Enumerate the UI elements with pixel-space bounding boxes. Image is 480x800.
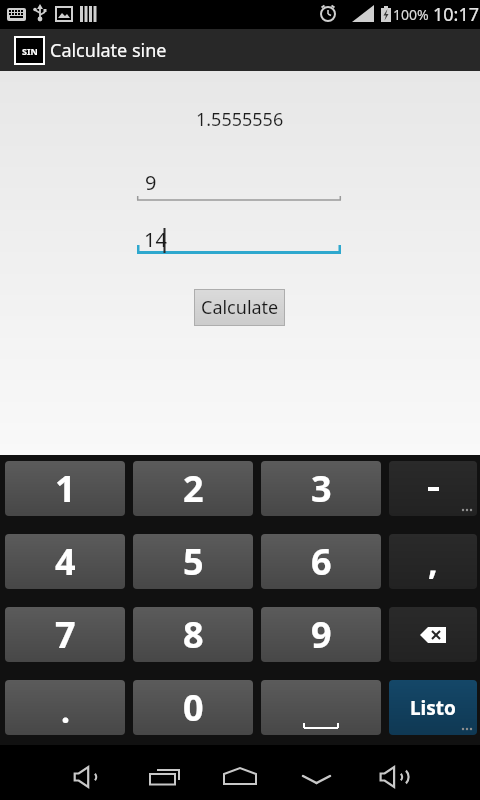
staticText: , [428,539,438,585]
button[interactable]: . [5,680,125,735]
button[interactable]: 9 [137,167,341,201]
staticText: 5 [183,537,204,586]
staticText: Calculate [201,295,279,320]
button[interactable]: 2 [133,461,253,516]
button[interactable]: 7 [5,607,125,662]
staticText: 6 [311,537,332,586]
button[interactable] [366,749,414,797]
staticText: Calculate sine [50,38,167,63]
button[interactable]: 1 [5,461,125,516]
staticText: 2 [183,464,204,513]
button[interactable] [389,461,477,516]
button[interactable]: 6 [261,534,381,589]
staticText: 8 [183,610,204,659]
button[interactable] [140,749,188,797]
staticText: 7 [55,610,76,659]
staticText: 4 [55,537,76,586]
staticText: 0 [183,683,204,732]
staticText: 3 [311,464,332,513]
button[interactable]: 8 [133,607,253,662]
button[interactable] [58,749,106,797]
staticText: 9 [311,610,332,659]
staticText: Listo [410,695,456,721]
button[interactable]: 5 [133,534,253,589]
staticText: 10:17 [433,2,480,27]
button[interactable]: Listo [389,680,477,735]
button[interactable]: 4 [5,534,125,589]
staticText: 1.5555556 [196,107,284,132]
button[interactable] [389,607,477,662]
button[interactable]: , [389,534,477,589]
button[interactable]: 3 [261,461,381,516]
staticText: 1 [55,464,76,513]
staticText: 9 [145,169,157,196]
button[interactable]: SIN [14,36,45,65]
staticText: SIN [22,45,38,57]
staticText: 14 [144,226,167,253]
button[interactable] [292,749,340,797]
button[interactable] [261,680,381,735]
button[interactable]: 14 [137,220,341,254]
button[interactable]: Calculate [194,289,285,326]
staticText: . [61,689,70,733]
button[interactable]: 0 [133,680,253,735]
button[interactable] [216,749,264,797]
button[interactable]: 9 [261,607,381,662]
staticText: 100% [393,5,429,24]
